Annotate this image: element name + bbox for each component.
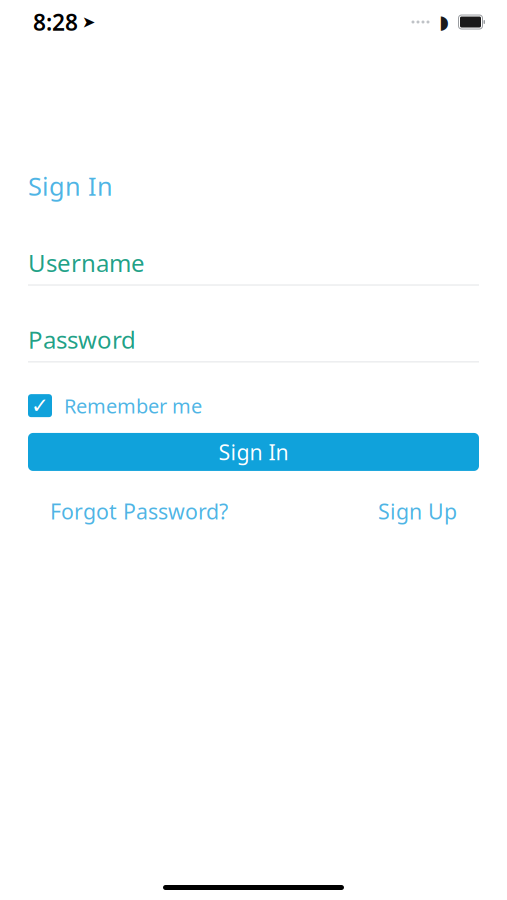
staticText: ◗	[439, 11, 449, 33]
staticText: 8:28	[33, 7, 78, 37]
staticText: Remember me	[64, 392, 202, 419]
button[interactable]: ✓	[0, 392, 507, 419]
staticText: Username	[28, 247, 145, 278]
staticText: Sign In	[28, 169, 113, 203]
staticText: ✓	[31, 394, 49, 418]
button[interactable]: Sign In	[28, 433, 479, 471]
staticText: Password	[28, 323, 136, 355]
staticText: Sign In	[218, 438, 288, 466]
button[interactable]: Sign Up	[378, 497, 457, 525]
button[interactable]: Forgot Password?	[50, 497, 228, 525]
staticText: Sign Up	[378, 497, 457, 525]
staticText: ➤	[82, 13, 95, 31]
staticText: Forgot Password?	[50, 497, 228, 525]
